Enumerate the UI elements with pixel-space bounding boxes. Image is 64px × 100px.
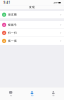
staticText: 视频号 xyxy=(8,23,17,26)
button[interactable]: 摇一摇 xyxy=(0,37,64,45)
button[interactable]: 联系人 xyxy=(21,87,43,100)
button[interactable]: 消息 xyxy=(0,87,21,100)
staticText: 发现 xyxy=(29,6,35,9)
staticText: 朋友圈 xyxy=(8,13,17,16)
staticText: 摇一摇 xyxy=(8,39,17,43)
button[interactable]: 视频号 xyxy=(0,21,64,29)
staticText: 联系人 xyxy=(30,95,33,96)
button[interactable]: 扫一扫 xyxy=(0,29,64,37)
staticText: 扫一扫 xyxy=(8,31,17,35)
button[interactable]: 我的 xyxy=(43,87,64,100)
button[interactable]: 朋友圈 xyxy=(0,11,64,18)
staticText: 我的 xyxy=(52,95,54,96)
staticText: 9:41 xyxy=(3,1,10,4)
